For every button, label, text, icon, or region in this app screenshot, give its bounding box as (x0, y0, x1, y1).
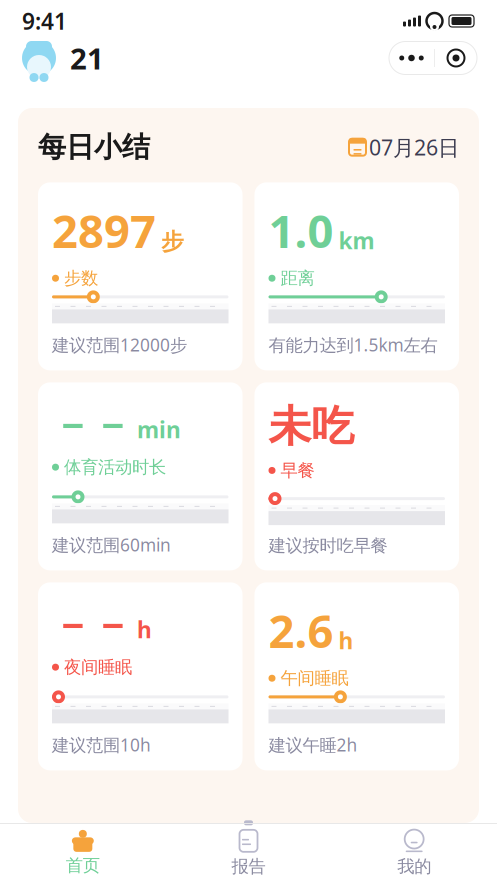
button[interactable]: －－ (38, 382, 242, 570)
staticText: 夜间睡眠 (64, 656, 132, 678)
staticText: 建议范围60min (52, 533, 171, 556)
button[interactable]: 2897 (38, 182, 242, 370)
button[interactable]: 报告 (166, 823, 331, 883)
button[interactable]: 2.6 (254, 582, 459, 770)
staticText: 未吃 (268, 400, 354, 453)
button[interactable]: 07月26日 (348, 133, 459, 161)
staticText: h (137, 614, 152, 644)
staticText: 21 (70, 38, 104, 77)
staticText: 建议范围12000步 (52, 333, 187, 356)
staticText: 2897 (52, 200, 156, 261)
staticText: 每日小结 (38, 130, 150, 164)
button[interactable]: －－ (38, 582, 242, 770)
staticText: －－ (52, 600, 132, 649)
staticText: 建议按时吃早餐 (268, 535, 387, 556)
staticText: 早餐 (280, 460, 314, 481)
staticText: h (338, 625, 353, 656)
staticText: 首页 (66, 855, 100, 876)
staticText: 午间睡眠 (280, 668, 348, 689)
button[interactable]: 未吃 (254, 382, 459, 570)
button[interactable]: 1.0 (254, 182, 459, 370)
button[interactable]: 我的 (331, 823, 497, 883)
staticText: 步数 (64, 268, 98, 289)
staticText: 建议范围10h (52, 733, 151, 756)
staticText: min (137, 414, 181, 444)
staticText: 我的 (397, 856, 431, 877)
button[interactable]: Profile 21 (20, 38, 104, 78)
staticText: 建议午睡2h (268, 733, 357, 756)
button[interactable]: Close (435, 42, 477, 74)
staticText: －－ (52, 400, 132, 449)
button[interactable]: More (389, 42, 434, 74)
staticText: km (338, 225, 374, 256)
staticText: 07月26日 (369, 133, 459, 161)
staticText: 2.6 (268, 600, 333, 661)
staticText: 步 (161, 228, 184, 256)
button[interactable]: 首页 (0, 823, 166, 883)
staticText: 9:41 (22, 6, 67, 36)
staticText: 距离 (280, 268, 314, 289)
staticText: 有能力达到1.5km左右 (268, 333, 437, 356)
staticText: 报告 (231, 856, 265, 877)
staticText: 体育活动时长 (64, 456, 166, 478)
staticText: 1.0 (268, 200, 333, 261)
